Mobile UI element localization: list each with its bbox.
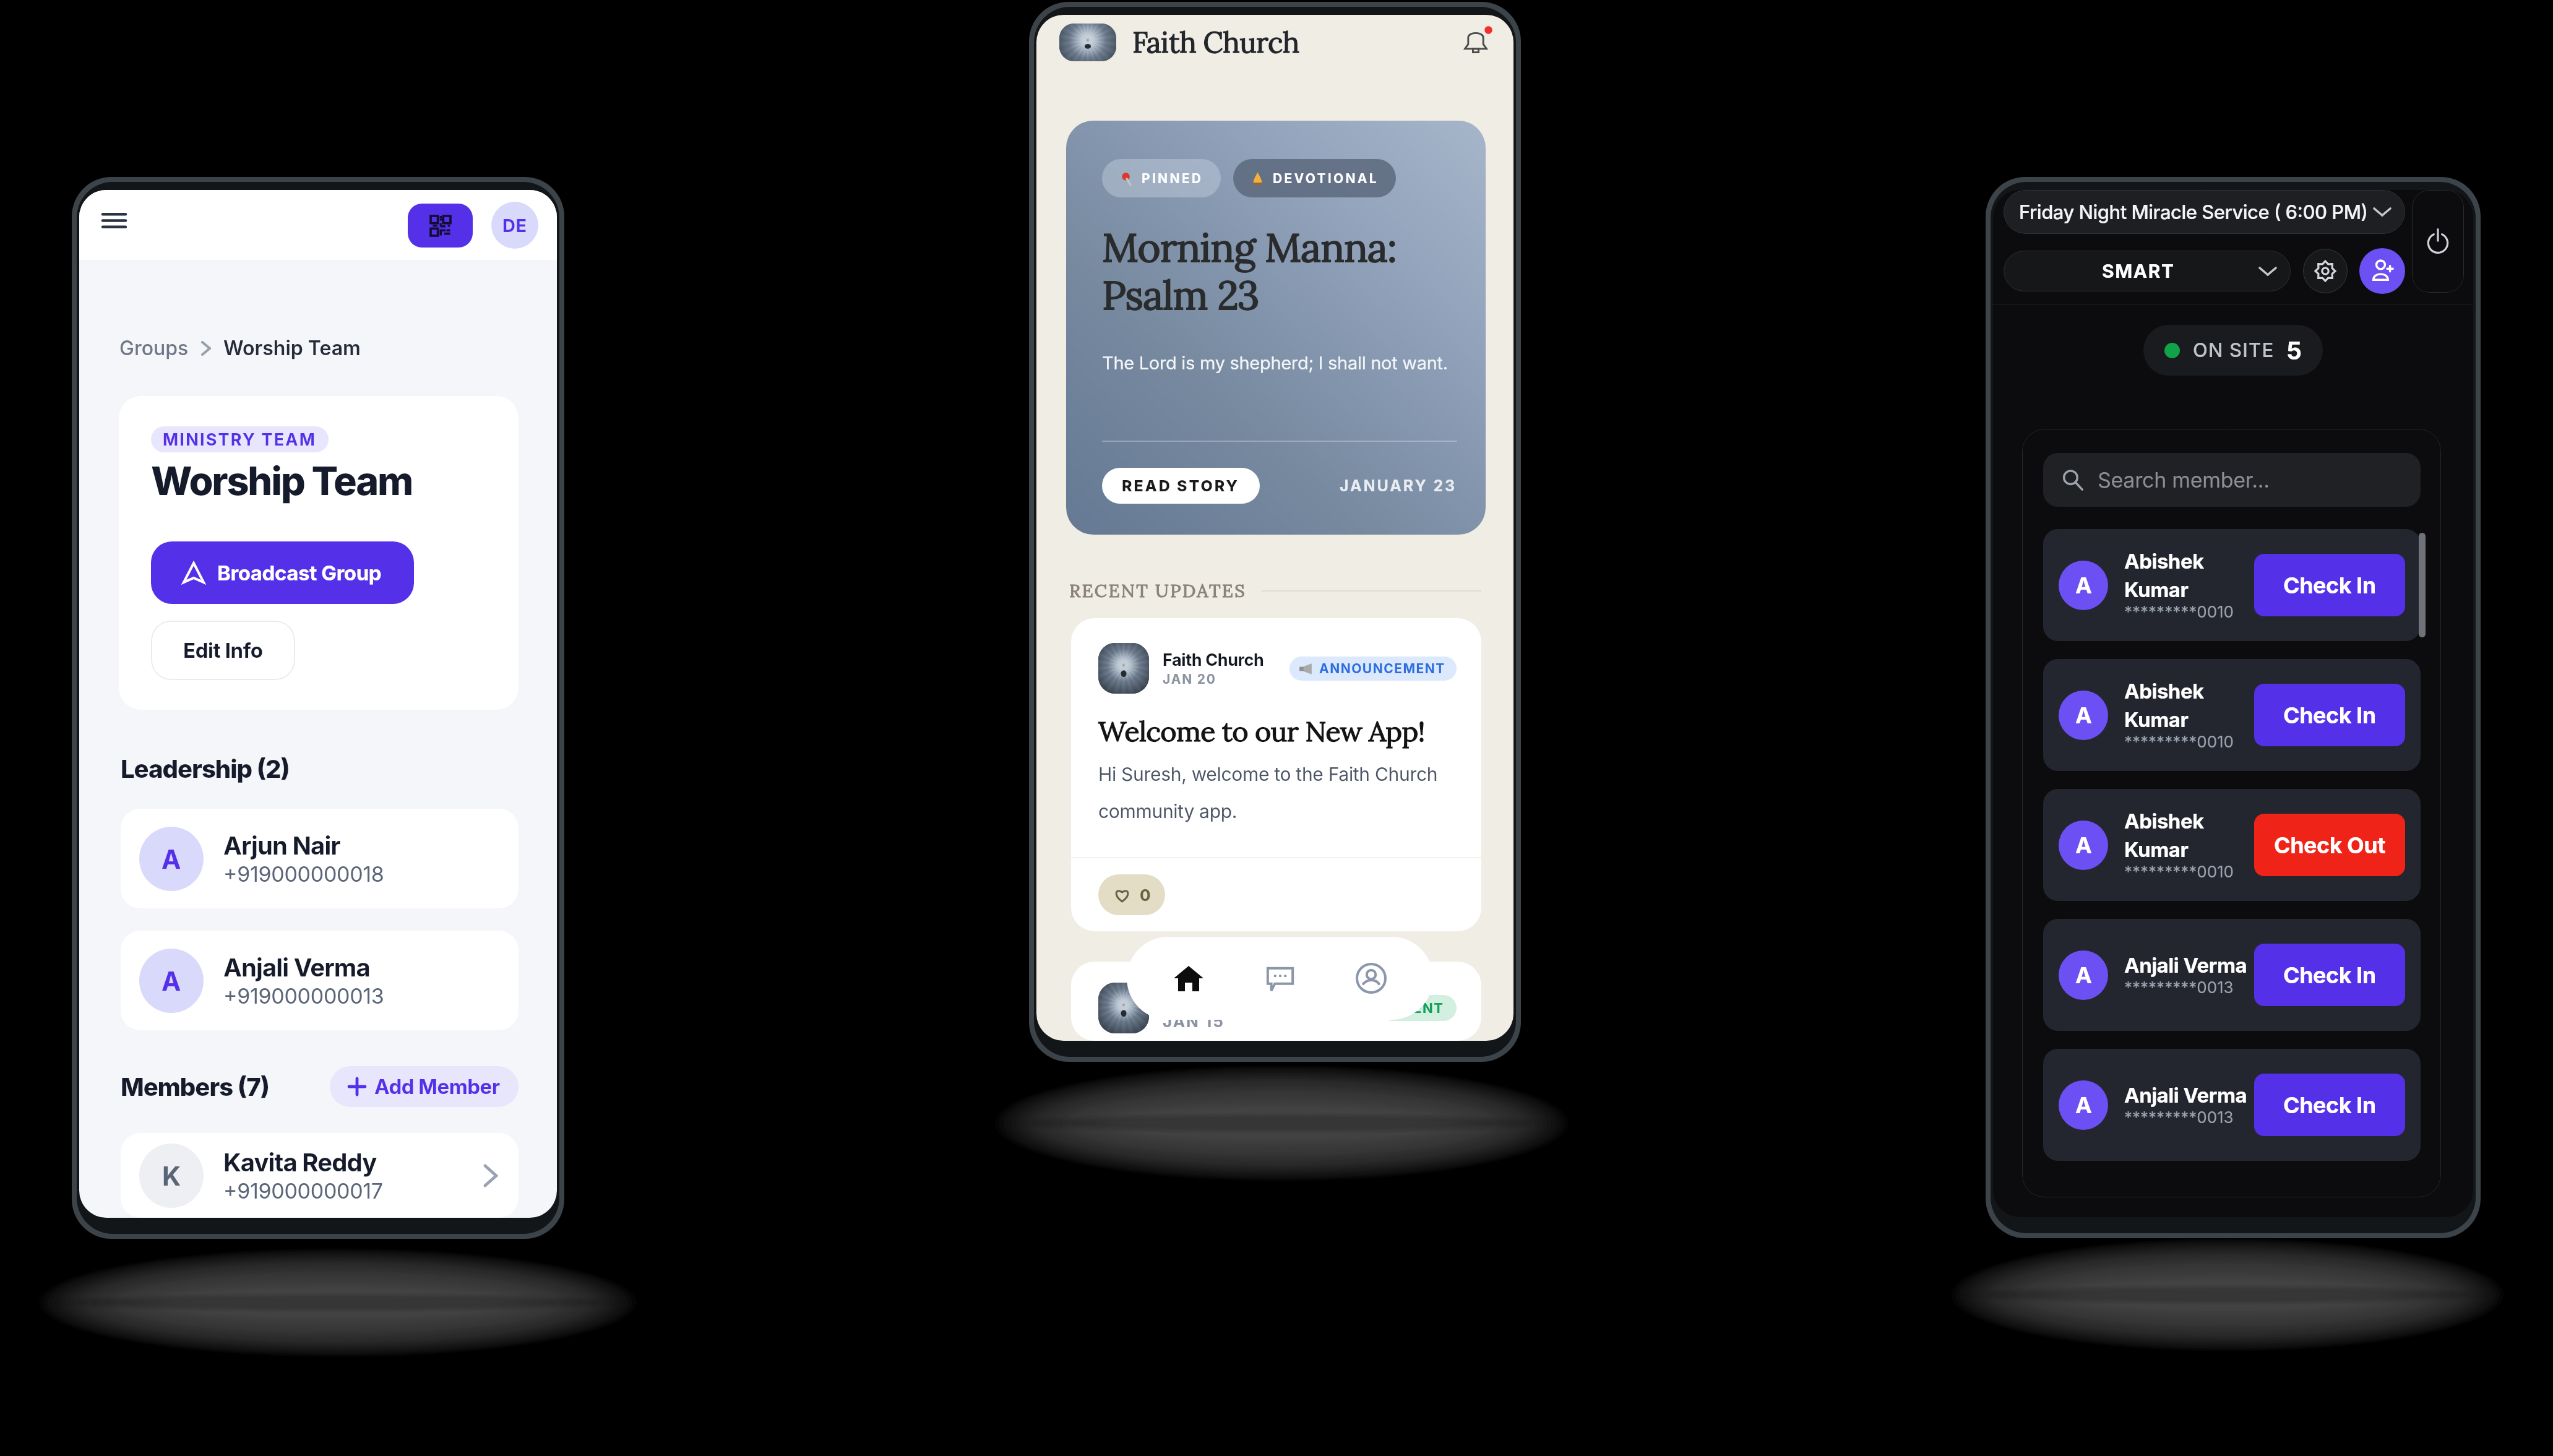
staticText: Welcome to our New App! [1098, 713, 1425, 749]
staticText: +919000000017 [223, 1178, 383, 1204]
staticText: 0 [1140, 885, 1151, 905]
button[interactable]: Edit Info [151, 621, 295, 680]
button[interactable]: 0 [1098, 874, 1165, 915]
staticText: PINNED [1142, 171, 1203, 186]
staticText: *********0010 [2124, 862, 2234, 881]
staticText: ANNOUNCEMENT [1319, 661, 1445, 676]
staticText: Check Out [2274, 832, 2385, 859]
staticText: READ STORY [1122, 476, 1240, 495]
staticText: Morning Manna: Psalm 23 [1102, 222, 1397, 320]
staticText: A [161, 843, 181, 875]
button[interactable]: Check Out [2254, 814, 2405, 876]
button[interactable]: K [121, 1133, 519, 1218]
staticText: Edit Info [183, 638, 263, 663]
staticText: Friday Night Miracle Service ( 6:00 PM) [2019, 200, 2368, 224]
button[interactable]: Add Member [330, 1066, 519, 1107]
button[interactable]: Open menu [103, 213, 126, 228]
button[interactable]: SMART [2004, 251, 2291, 291]
button[interactable]: DE [491, 202, 538, 249]
button[interactable]: A [2043, 659, 2421, 771]
staticText: ON SITE [2193, 338, 2275, 362]
staticText: Leadership (2) [121, 754, 290, 783]
button[interactable]: Check In [2254, 944, 2405, 1006]
staticText: Abishek Kumar [2124, 809, 2204, 862]
staticText: *********0013 [2124, 978, 2234, 997]
staticText: Faith Church [1163, 650, 1264, 670]
button[interactable]: Profile [1341, 949, 1401, 1008]
staticText: JAN 15 [1163, 1012, 1225, 1031]
button[interactable]: Power [2412, 190, 2464, 293]
staticText: Faith Church [1163, 985, 1286, 1010]
button[interactable]: Settings [2303, 249, 2348, 293]
staticText: *********0013 [2124, 1108, 2234, 1127]
staticText: K [162, 1160, 181, 1192]
staticText: EVENT [1393, 1000, 1444, 1017]
staticText: Arjun Nair [223, 830, 340, 860]
staticText: *********0010 [2124, 732, 2234, 751]
button[interactable]: Friday Night Miracle Service ( 6:00 PM) [2004, 190, 2405, 234]
button[interactable]: READ STORY [1102, 468, 1260, 504]
button[interactable]: Add member [2359, 248, 2405, 294]
staticText: A [2075, 962, 2092, 989]
staticText: A [2075, 1092, 2092, 1119]
button[interactable]: Messages [1251, 949, 1310, 1008]
button[interactable]: A [121, 931, 519, 1030]
button[interactable]: A [2043, 1049, 2421, 1161]
button[interactable]: Search member... [2043, 453, 2421, 507]
button[interactable]: Scan QR code [408, 204, 473, 248]
staticText: Broadcast Group [217, 561, 382, 585]
staticText: DEVOTIONAL [1273, 171, 1379, 186]
button[interactable]: A [2043, 529, 2421, 641]
staticText: +919000000018 [223, 861, 384, 887]
button[interactable]: Check In [2254, 1074, 2405, 1136]
button[interactable]: A [121, 809, 519, 908]
staticText: Worship Team [223, 336, 361, 360]
button[interactable]: Check In [2254, 684, 2405, 746]
button[interactable]: Notifications [1464, 28, 1487, 54]
staticText: Check In [2283, 962, 2376, 989]
staticText: A [2075, 572, 2092, 599]
staticText: SMART [2102, 260, 2175, 282]
staticText: MINISTRY TEAM [163, 429, 317, 450]
staticText: 5 [2286, 336, 2302, 365]
staticText: Check In [2283, 702, 2376, 729]
staticText: Check In [2283, 1092, 2376, 1119]
button[interactable]: Check In [2254, 554, 2405, 616]
button[interactable]: Groups [119, 336, 189, 360]
staticText: Kavita Reddy [223, 1147, 377, 1177]
button[interactable]: Home [1159, 949, 1218, 1008]
staticText: Hi Suresh, welcome to the Faith Church c… [1098, 763, 1457, 822]
staticText: Worship Team [151, 457, 413, 504]
staticText: Check In [2283, 572, 2376, 599]
staticText: A [2075, 702, 2092, 729]
button[interactable]: A [2043, 919, 2421, 1031]
staticText: Abishek Kumar [2124, 679, 2204, 732]
staticText: DE [502, 215, 527, 236]
staticText: Search member... [2098, 467, 2270, 493]
staticText: Anjali Verma [2124, 1083, 2247, 1108]
staticText: *********0010 [2124, 602, 2234, 621]
staticText: +919000000013 [223, 983, 384, 1009]
staticText: Abishek Kumar [2124, 549, 2204, 602]
staticText: The Lord is my shepherd; I shall not wan… [1102, 352, 1448, 374]
staticText: Members (7) [121, 1072, 269, 1101]
staticText: A [2075, 832, 2092, 859]
staticText: JAN 20 [1163, 671, 1216, 687]
staticText: Anjali Verma [2124, 953, 2247, 978]
button[interactable]: Broadcast Group [151, 541, 414, 604]
button[interactable]: A [2043, 789, 2421, 901]
staticText: JANUARY 23 [1340, 476, 1457, 495]
staticText: Faith Church [1132, 24, 1299, 61]
staticText: A [161, 965, 181, 997]
staticText: Add Member [374, 1074, 500, 1099]
staticText: Anjali Verma [223, 952, 370, 982]
staticText: RECENT UPDATES [1069, 579, 1246, 602]
